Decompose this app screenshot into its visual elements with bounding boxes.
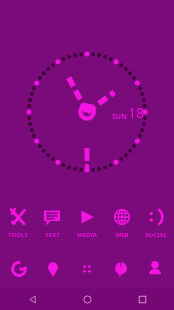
button[interactable]: Recents [119,288,165,310]
staticText: TOOLS [8,231,28,239]
button[interactable]: TEXT [35,207,69,239]
button[interactable]: TOOLS [1,207,35,239]
staticText: MEDIA [77,231,97,239]
staticText: TEXT [45,231,60,239]
button[interactable]: Contacts [140,254,170,284]
button[interactable]: MEDIA [70,207,104,239]
button[interactable]: Google search [4,254,34,284]
staticText: SUN [112,112,127,122]
button[interactable]: Home [64,288,110,310]
button[interactable]: Messages [106,254,136,284]
button[interactable]: SUN [0,0,174,195]
button[interactable]: WEB [105,207,139,239]
staticText: SOCIAL [145,231,167,239]
button[interactable]: Maps [38,254,68,284]
button[interactable]: Back [9,288,55,310]
staticText: WEB [115,231,129,239]
button[interactable]: All apps [72,254,102,284]
staticText: 18 [128,103,145,122]
button[interactable]: SOCIAL [139,207,173,239]
